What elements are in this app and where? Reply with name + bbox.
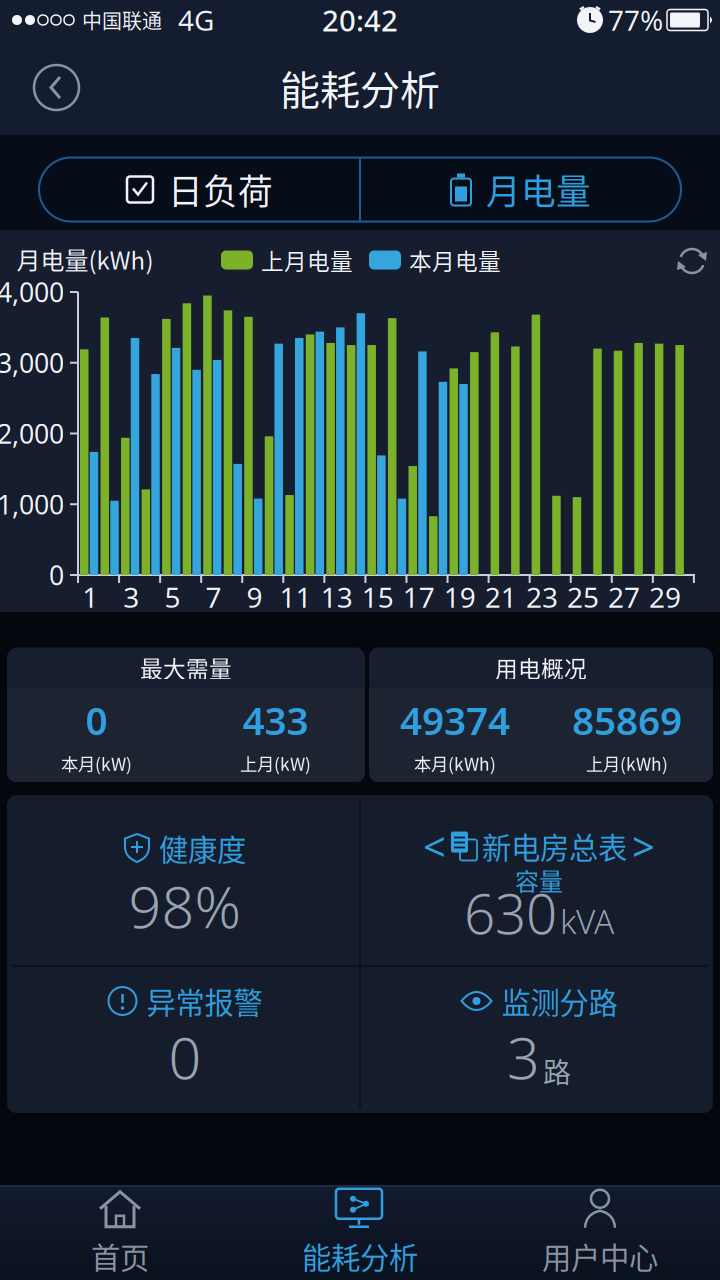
staticText: 0 (85, 694, 107, 746)
staticText: 4G (178, 1, 214, 39)
staticText: 本月电量 (409, 244, 501, 276)
staticText: 2,000 (0, 416, 64, 451)
staticText: 0 (168, 1019, 201, 1095)
staticText: 19 (444, 578, 476, 616)
staticText: 用电概况 (495, 651, 587, 684)
staticText: kVA (560, 899, 614, 943)
staticText: 9 (246, 578, 262, 616)
staticText: 能耗分析 (280, 58, 440, 116)
button[interactable]: 用户中心 (480, 1185, 720, 1280)
staticText: 4,000 (0, 274, 64, 310)
staticText: 11 (280, 578, 312, 616)
button[interactable]: Refresh (677, 246, 707, 276)
button[interactable]: 日负荷 (39, 157, 360, 221)
staticText: 日负荷 (168, 164, 273, 215)
staticText: 21 (485, 578, 517, 616)
staticText: 49374 (400, 694, 510, 746)
staticText: 3 (507, 1019, 540, 1095)
staticText: 25 (567, 578, 599, 616)
staticText: 首页 (91, 1235, 149, 1277)
button[interactable]: 首页 (0, 1185, 240, 1280)
staticText: 1 (82, 578, 98, 616)
staticText: 98% (128, 868, 241, 944)
staticText: 上月(kWh) (586, 751, 668, 776)
staticText: 3 (123, 578, 139, 616)
staticText: 异常报警 (146, 980, 262, 1022)
staticText: 上月(kW) (240, 751, 311, 776)
staticText: 中国联通 (82, 5, 162, 34)
button[interactable]: < (423, 819, 655, 872)
staticText: 17 (403, 578, 435, 616)
staticText: 3,000 (0, 345, 64, 380)
staticText: 85869 (572, 694, 682, 746)
staticText: 0 (49, 557, 64, 593)
staticText: 月电量(kWh) (16, 242, 153, 276)
staticText: 监测分路 (501, 980, 617, 1022)
button[interactable]: Back (34, 65, 79, 110)
staticText: 月电量 (486, 164, 591, 215)
staticText: 15 (362, 578, 394, 616)
staticText: 能耗分析 (302, 1235, 418, 1277)
staticText: 23 (526, 578, 558, 616)
staticText: 13 (321, 578, 353, 616)
staticText: 上月电量 (261, 244, 353, 276)
staticText: 20:42 (322, 0, 398, 39)
staticText: 1,000 (0, 486, 64, 522)
staticText: 本月(kWh) (414, 751, 496, 776)
staticText: 630 (464, 877, 557, 949)
button[interactable]: 能耗分析 (240, 1185, 480, 1280)
staticText: 用户中心 (542, 1235, 658, 1277)
staticText: < (423, 819, 446, 872)
staticText: 本月(kW) (61, 751, 132, 776)
staticText: 容量 (515, 863, 563, 897)
staticText: 健康度 (159, 827, 246, 869)
staticText: 29 (649, 578, 681, 616)
staticText: 27 (608, 578, 640, 616)
staticText: 77% (608, 1, 663, 39)
staticText: > (632, 819, 655, 872)
staticText: 433 (242, 694, 308, 746)
staticText: 最大需量 (140, 651, 232, 684)
button[interactable]: 月电量 (360, 157, 681, 221)
staticText: 5 (164, 578, 180, 616)
staticText: 新电房总表 (482, 825, 627, 867)
staticText: 7 (205, 578, 221, 616)
staticText: 路 (543, 1050, 571, 1091)
